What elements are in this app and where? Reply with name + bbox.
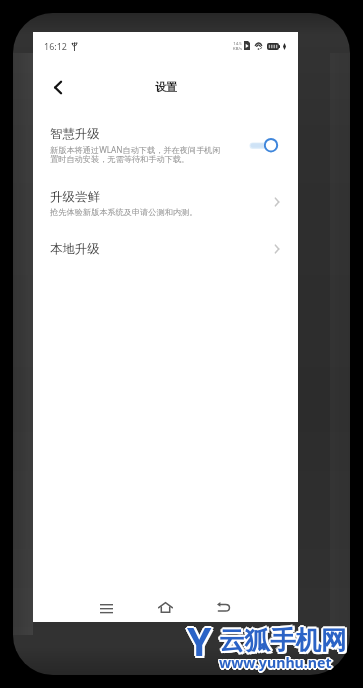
staticText: Y bbox=[189, 614, 214, 667]
staticText: www.yunhu.net bbox=[221, 653, 334, 672]
staticText: Y bbox=[186, 616, 211, 669]
staticText: 升级尝鲜 bbox=[50, 189, 100, 205]
staticText: www.yunhu.net bbox=[218, 653, 331, 672]
staticText: www.yunhu.net bbox=[219, 655, 332, 674]
staticText: 16:12 bbox=[44, 40, 68, 52]
staticText: www.yunhu.net bbox=[218, 654, 331, 673]
staticText: 云狐手机网 bbox=[219, 622, 347, 654]
staticText: Y bbox=[186, 613, 211, 666]
staticText: Y bbox=[189, 613, 214, 666]
button[interactable]: 智慧升级 bbox=[33, 115, 298, 170]
staticText: 云狐手机网 bbox=[218, 623, 346, 655]
staticText: www.yunhu.net bbox=[220, 654, 333, 673]
staticText: 云狐手机网 bbox=[221, 626, 349, 658]
staticText: 抢先体验新版本系统及申请公测和内测。 bbox=[50, 207, 198, 217]
staticText: Y bbox=[189, 616, 214, 669]
staticText: 设置 bbox=[155, 80, 177, 94]
staticText: www.yunhu.net bbox=[220, 652, 333, 671]
button[interactable]: Back bbox=[44, 73, 72, 101]
staticText: 本地升级 bbox=[50, 241, 100, 257]
staticText: 云狐手机网 bbox=[218, 626, 346, 658]
staticText: 新版本将通过WLAN自动下载，并在夜间手机闲 置时自动安装，无需等待和手动下载。 bbox=[50, 144, 221, 165]
button[interactable]: Recent apps bbox=[92, 594, 120, 622]
staticText: 智慧升级 bbox=[50, 126, 100, 142]
button[interactable]: 本地升级 bbox=[33, 232, 298, 272]
staticText: 云狐手机网 bbox=[221, 623, 349, 655]
button[interactable]: 升级尝鲜 bbox=[33, 180, 298, 226]
staticText: www.yunhu.net bbox=[219, 653, 332, 672]
staticText: Y bbox=[185, 614, 210, 667]
staticText: Y bbox=[187, 614, 212, 667]
button[interactable]: Home bbox=[151, 593, 179, 621]
staticText: 云狐手机网 bbox=[221, 624, 349, 656]
staticText: Y bbox=[187, 612, 212, 665]
staticText: 14.5 KB/s bbox=[232, 41, 243, 51]
staticText: Y bbox=[187, 616, 212, 669]
staticText: www.yunhu.net bbox=[219, 652, 332, 671]
staticText: 云狐手机网 bbox=[219, 624, 347, 656]
staticText: 云狐手机网 bbox=[219, 626, 347, 658]
staticText: 云狐手机网 bbox=[217, 624, 345, 656]
button[interactable]: Back bbox=[210, 593, 238, 621]
button[interactable]: Toggle smart upgrade bbox=[248, 134, 286, 157]
staticText: www.yunhu.net bbox=[218, 652, 331, 671]
